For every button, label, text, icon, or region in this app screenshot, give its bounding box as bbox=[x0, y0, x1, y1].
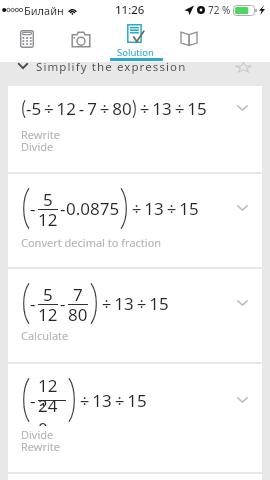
staticText: 121 bbox=[38, 374, 66, 406]
staticText: 12 bbox=[38, 303, 58, 326]
staticText: - bbox=[60, 292, 66, 315]
staticText: Rewrite Divide bbox=[21, 127, 61, 154]
staticText: - bbox=[60, 197, 66, 220]
staticText: ÷ 13 ÷ 15 bbox=[137, 97, 207, 120]
staticText: 240 bbox=[38, 394, 66, 426]
button[interactable]: Book bbox=[162, 20, 216, 62]
staticText: -5 ÷ 12 - 7 ÷ 80 bbox=[26, 97, 132, 120]
staticText: Convert decimal to fraction bbox=[21, 235, 162, 250]
staticText: - bbox=[30, 292, 36, 315]
staticText: 7 bbox=[73, 283, 83, 306]
staticText: 12 bbox=[38, 208, 58, 231]
staticText: ÷ 13 ÷ 15 bbox=[77, 389, 147, 412]
button[interactable]: Calculator bbox=[0, 20, 54, 62]
button[interactable]: Camera bbox=[54, 20, 108, 62]
staticText: 5 bbox=[43, 283, 53, 306]
button[interactable]: - bbox=[8, 269, 262, 362]
staticText: ÷ 13 ÷ 15 bbox=[129, 197, 199, 220]
button[interactable]: - bbox=[8, 364, 262, 472]
staticText: 0.0875 bbox=[66, 197, 120, 220]
staticText: ÷ 13 ÷ 15 bbox=[99, 292, 169, 315]
staticText: 5 bbox=[43, 188, 53, 211]
staticText: - bbox=[30, 197, 36, 220]
staticText: 72 % bbox=[208, 3, 231, 17]
button[interactable]: -5 ÷ 12 - 7 ÷ 80 bbox=[8, 86, 262, 172]
staticText: Calculate bbox=[21, 328, 69, 343]
staticText: Divide Rewrite bbox=[21, 427, 61, 454]
staticText: Билайн bbox=[24, 3, 64, 18]
button[interactable]: Solution bbox=[108, 20, 162, 62]
staticText: Simplify the expression bbox=[36, 59, 187, 75]
staticText: Solution bbox=[117, 46, 154, 59]
staticText: 80 bbox=[68, 303, 88, 326]
button[interactable]: - bbox=[8, 174, 262, 267]
staticText: 11:26 bbox=[115, 2, 145, 18]
staticText: - bbox=[30, 389, 36, 412]
